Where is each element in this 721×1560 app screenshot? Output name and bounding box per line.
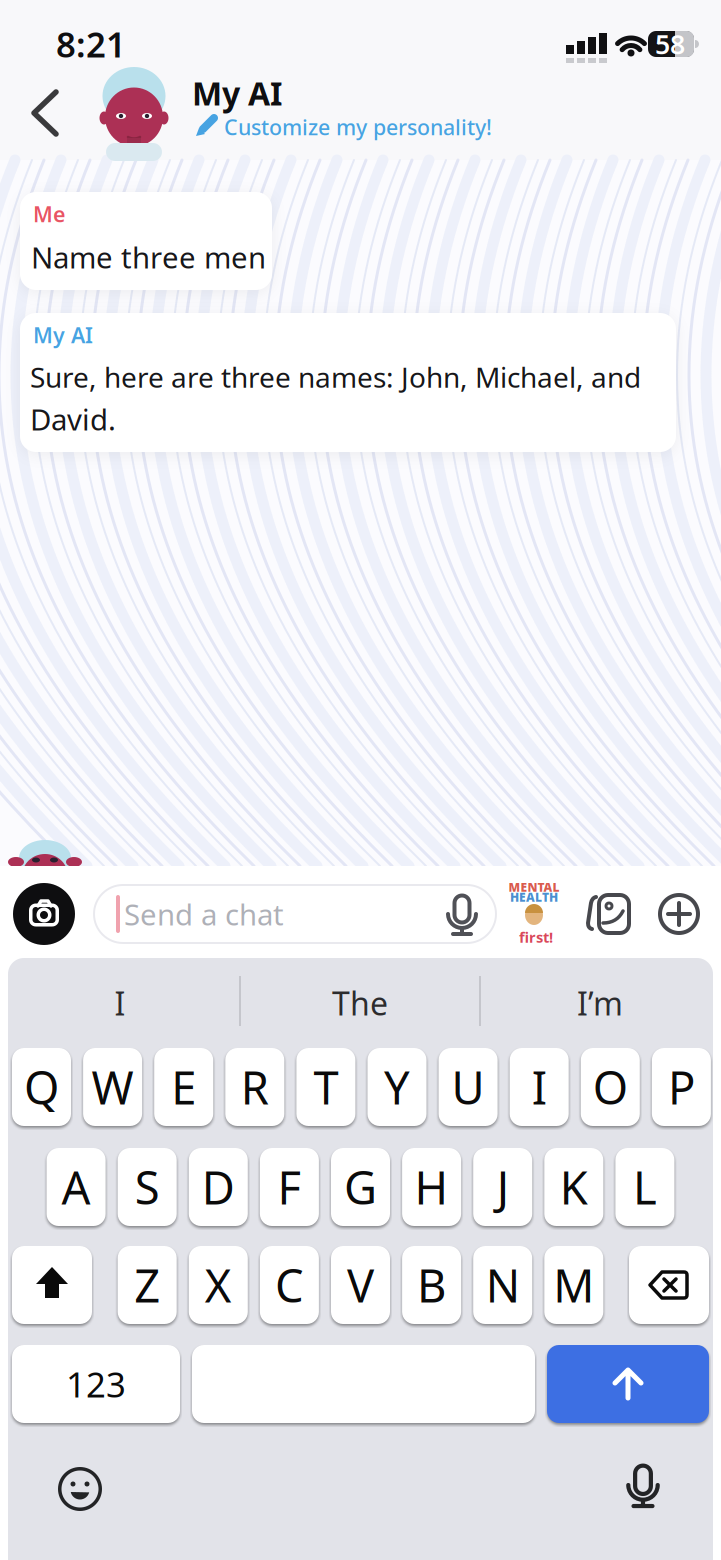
button[interactable]: A — [47, 1148, 106, 1226]
button[interactable]: S — [118, 1148, 177, 1226]
staticText: 8:21 — [56, 21, 126, 67]
button[interactable]: H — [402, 1148, 461, 1226]
staticText: Z — [134, 1255, 160, 1315]
staticText: Customize my personality! — [224, 113, 492, 141]
staticText: W — [92, 1057, 134, 1117]
button[interactable]: W — [83, 1048, 142, 1126]
staticText: Sure, here are three names: John, Michae… — [30, 358, 641, 396]
button[interactable]: N — [473, 1246, 532, 1324]
staticText: N — [486, 1255, 520, 1315]
button[interactable]: V — [331, 1246, 390, 1324]
button[interactable]: Z — [118, 1246, 177, 1324]
button[interactable]: K — [544, 1148, 603, 1226]
staticText: F — [277, 1157, 301, 1217]
staticText: J — [497, 1157, 509, 1217]
button[interactable]: Delete — [629, 1246, 709, 1324]
staticText: 58 — [655, 26, 685, 62]
button[interactable]: Send a chat — [93, 884, 497, 944]
staticText: G — [344, 1157, 377, 1217]
button[interactable]: Send — [547, 1345, 709, 1423]
button[interactable]: I’m — [486, 971, 714, 1035]
button[interactable]: New chat — [658, 893, 700, 935]
button[interactable]: Dictation — [621, 1465, 665, 1509]
button[interactable]: T — [296, 1048, 355, 1126]
staticText: Me — [33, 200, 65, 228]
staticText: MENTAL — [508, 879, 559, 895]
staticText: Send a chat — [124, 894, 284, 933]
button[interactable]: Shift — [12, 1246, 92, 1324]
button[interactable]: Y — [367, 1048, 426, 1126]
button[interactable]: Back — [23, 91, 67, 135]
button[interactable]: J — [473, 1148, 532, 1226]
button[interactable]: Customize my personality — [194, 113, 534, 141]
button[interactable]: The — [246, 971, 474, 1035]
button[interactable]: I — [6, 971, 234, 1035]
button[interactable]: Stickers — [587, 893, 633, 935]
button[interactable]: F — [260, 1148, 319, 1226]
staticText: Q — [24, 1057, 59, 1117]
staticText: My AI — [33, 321, 93, 349]
staticText: T — [313, 1057, 338, 1117]
staticText: C — [275, 1255, 304, 1315]
button[interactable]: Sticker — [509, 882, 561, 946]
staticText: Y — [384, 1057, 410, 1117]
staticText: The — [332, 982, 388, 1024]
button[interactable]: O — [581, 1048, 640, 1126]
button[interactable]: E — [154, 1048, 213, 1126]
button[interactable]: G — [331, 1148, 390, 1226]
staticText: L — [633, 1157, 657, 1217]
button[interactable]: L — [615, 1148, 674, 1226]
button[interactable]: C — [260, 1246, 319, 1324]
staticText: K — [560, 1157, 588, 1217]
button[interactable]: I — [510, 1048, 569, 1126]
staticText: V — [347, 1255, 374, 1315]
staticText: H — [415, 1157, 449, 1217]
staticText: I — [114, 982, 125, 1024]
staticText: I — [532, 1057, 547, 1117]
staticText: M — [553, 1255, 594, 1315]
staticText: X — [205, 1255, 232, 1315]
staticText: P — [668, 1057, 695, 1117]
staticText: I’m — [577, 982, 623, 1024]
button[interactable]: X — [189, 1246, 248, 1324]
staticText: S — [135, 1157, 160, 1217]
staticText: first! — [519, 927, 553, 947]
staticText: A — [62, 1157, 91, 1217]
button[interactable]: B — [402, 1246, 461, 1324]
button[interactable]: Q — [12, 1048, 71, 1126]
button[interactable]: R — [225, 1048, 284, 1126]
staticText: D — [202, 1157, 235, 1217]
button[interactable]: Space — [192, 1345, 535, 1423]
staticText: David. — [30, 399, 116, 438]
staticText: My AI — [192, 72, 282, 114]
button[interactable]: M — [544, 1246, 603, 1324]
staticText: Name three men — [31, 237, 266, 276]
staticText: O — [593, 1057, 628, 1117]
button[interactable]: Camera — [13, 883, 75, 945]
button[interactable]: U — [439, 1048, 498, 1126]
staticText: E — [171, 1057, 196, 1117]
button[interactable]: Emoji — [58, 1467, 102, 1511]
staticText: U — [452, 1057, 485, 1117]
staticText: HEALTH — [510, 889, 558, 905]
staticText: B — [417, 1255, 446, 1315]
button[interactable]: 123 — [12, 1345, 180, 1423]
button[interactable]: D — [189, 1148, 248, 1226]
staticText: R — [241, 1057, 269, 1117]
button[interactable]: P — [652, 1048, 711, 1126]
staticText: 123 — [66, 1361, 126, 1407]
